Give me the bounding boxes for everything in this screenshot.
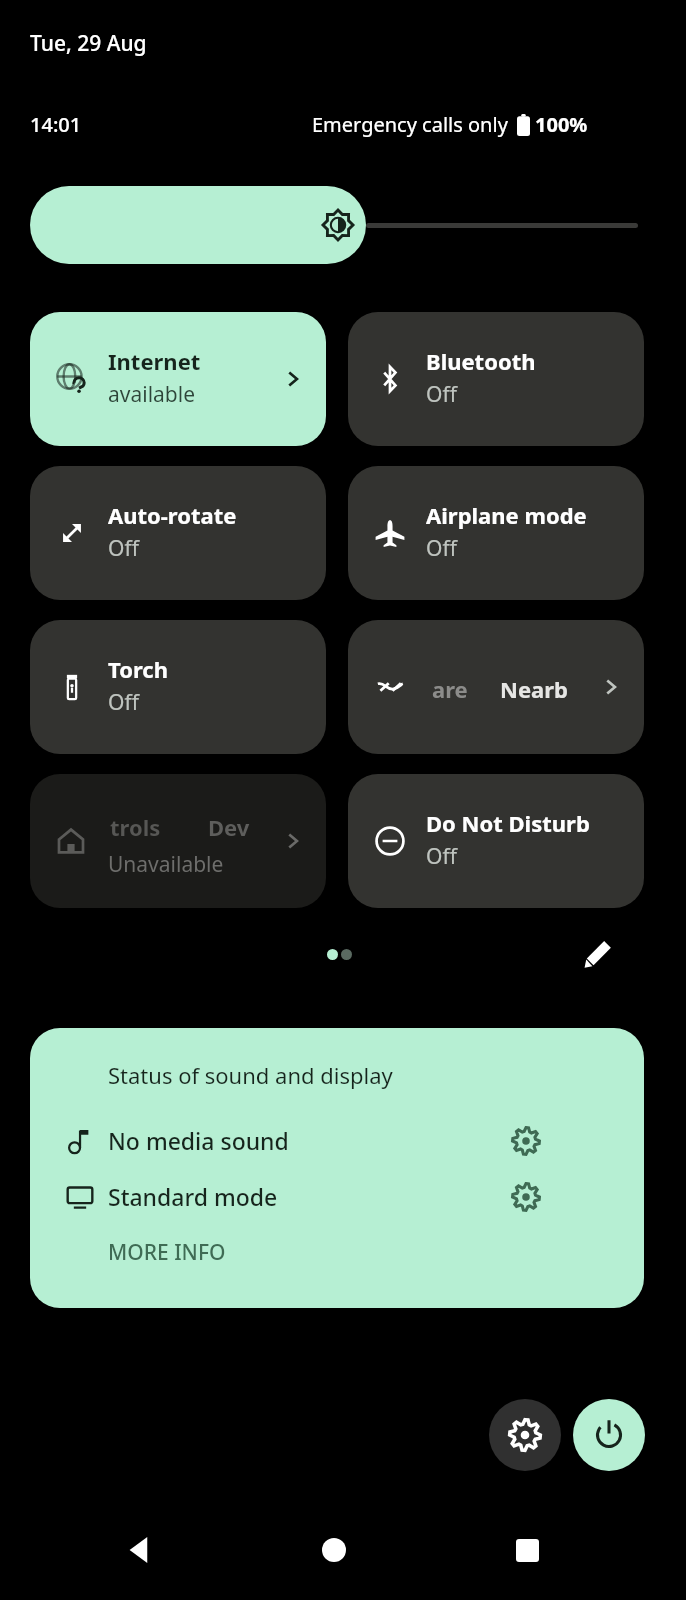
- staticText: Status of sound and display: [108, 1060, 393, 1090]
- staticText: Unavailable: [108, 850, 224, 879]
- button[interactable]: Torch: [30, 620, 326, 754]
- staticText: Standard mode: [108, 1181, 278, 1212]
- button[interactable]: Airplane mode: [348, 466, 644, 600]
- button[interactable]: [30, 186, 656, 264]
- staticText: Airplane mode: [426, 500, 587, 530]
- staticText: Tue, 29 Aug: [30, 29, 147, 58]
- button[interactable]: Do Not Disturb: [348, 774, 644, 908]
- staticText: Off: [426, 380, 457, 409]
- button[interactable]: Power: [573, 1399, 645, 1471]
- staticText: Auto-rotate: [108, 500, 237, 530]
- staticText: Bluetooth: [426, 346, 536, 376]
- button[interactable]: Settings: [489, 1399, 561, 1471]
- button[interactable]: Bluetooth: [348, 312, 644, 446]
- staticText: 100%: [535, 111, 588, 138]
- staticText: Off: [426, 842, 457, 871]
- staticText: No media sound: [108, 1125, 289, 1156]
- button[interactable]: Home: [284, 1500, 384, 1600]
- button[interactable]: Status of sound and display: [30, 1028, 644, 1308]
- button[interactable]: are: [348, 620, 644, 754]
- staticText: trols: [110, 812, 161, 842]
- staticText: available: [108, 380, 196, 409]
- staticText: Internet: [108, 346, 201, 376]
- staticText: Emergency calls only: [312, 111, 508, 138]
- button[interactable]: Media sound settings: [498, 1113, 554, 1169]
- button[interactable]: [322, 944, 342, 964]
- button[interactable]: MORE INFO: [94, 1226, 274, 1278]
- button[interactable]: Internet: [30, 312, 326, 446]
- button[interactable]: trols: [30, 774, 326, 908]
- staticText: Off: [108, 534, 139, 563]
- staticText: Off: [426, 534, 457, 563]
- staticText: MORE INFO: [108, 1238, 226, 1267]
- staticText: Dev: [208, 812, 250, 842]
- button[interactable]: Auto-rotate: [30, 466, 326, 600]
- button[interactable]: Edit quick settings: [574, 930, 622, 978]
- staticText: Off: [108, 688, 139, 717]
- staticText: Nearb: [500, 674, 568, 704]
- button[interactable]: Display settings: [498, 1169, 554, 1225]
- staticText: are: [432, 674, 468, 704]
- staticText: Do Not Disturb: [426, 808, 590, 838]
- staticText: Torch: [108, 654, 168, 684]
- staticText: 14:01: [30, 111, 82, 138]
- button[interactable]: Recent apps: [477, 1500, 577, 1600]
- button[interactable]: Back: [90, 1500, 190, 1600]
